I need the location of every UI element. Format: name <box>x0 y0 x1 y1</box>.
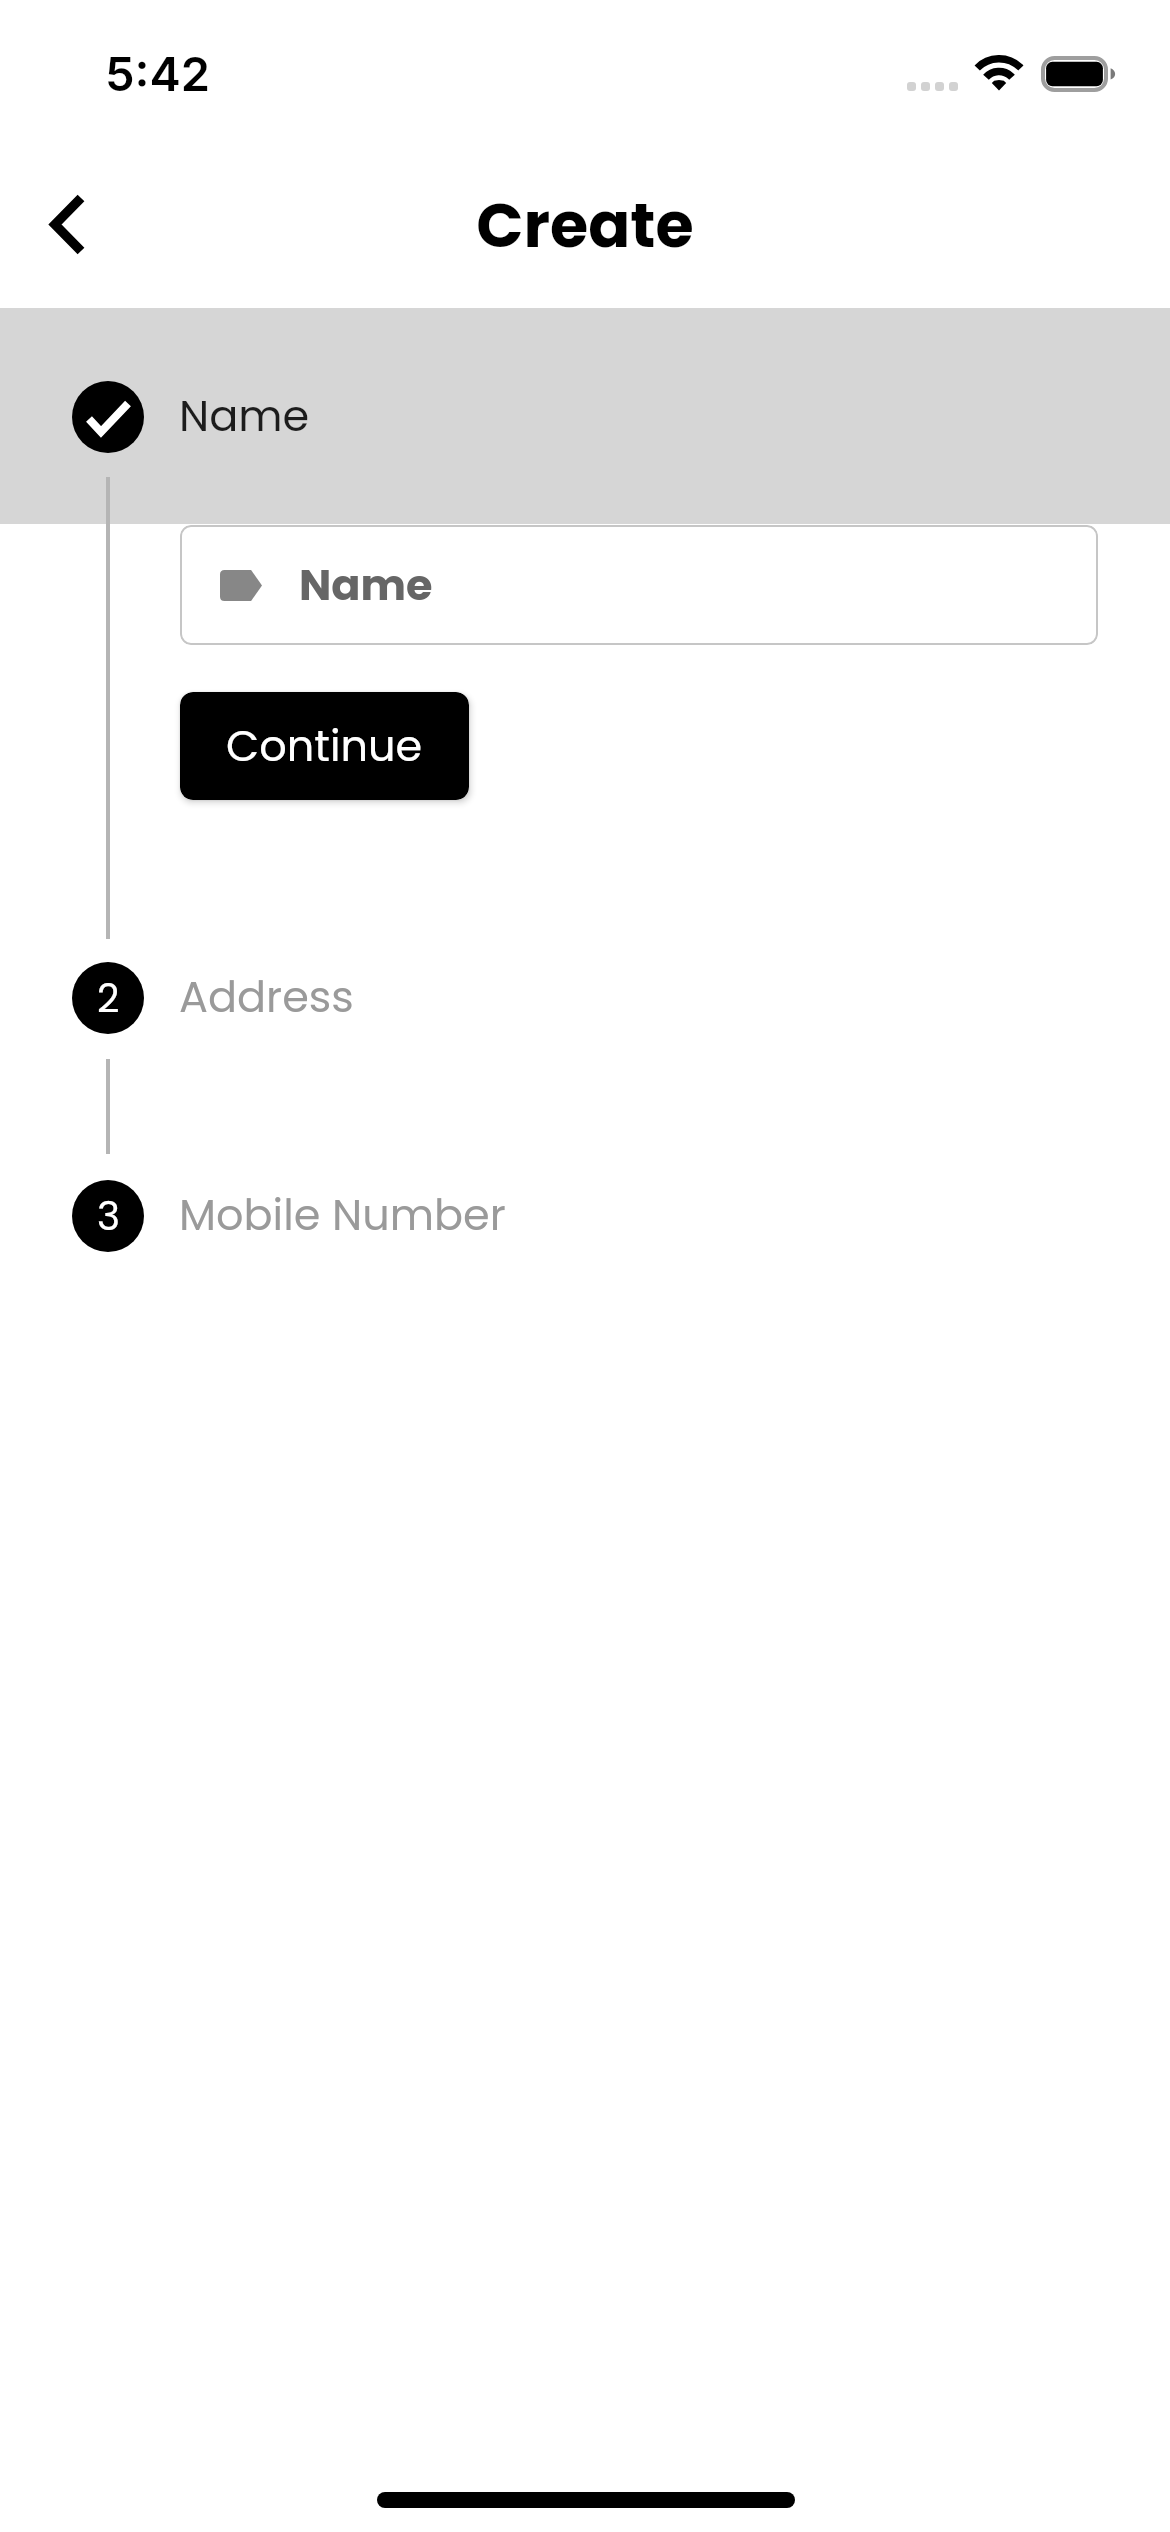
staticText: 2 <box>97 971 120 1026</box>
button[interactable]: 3 <box>0 1180 1170 1252</box>
button[interactable]: Continue <box>180 692 469 800</box>
staticText: Mobile Number <box>179 1185 506 1245</box>
staticText: Address <box>179 967 354 1027</box>
staticText: Name <box>299 555 433 615</box>
staticText: Continue <box>226 716 423 776</box>
staticText: Name <box>179 386 310 446</box>
button[interactable]: Name <box>180 525 1098 645</box>
button[interactable]: Name <box>0 308 1170 524</box>
staticText: Create <box>0 182 1170 269</box>
staticText: 3 <box>97 1189 120 1244</box>
staticText: 5:42 <box>105 45 211 102</box>
button[interactable]: 2 <box>0 962 1170 1034</box>
button[interactable]: Back <box>5 165 125 285</box>
